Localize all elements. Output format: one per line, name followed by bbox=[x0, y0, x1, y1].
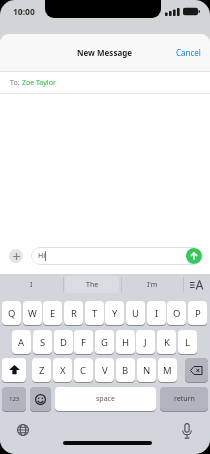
button[interactable] bbox=[30, 387, 51, 411]
staticText: A bbox=[18, 336, 25, 349]
button[interactable] bbox=[9, 249, 23, 263]
button[interactable]: Q bbox=[2, 301, 21, 325]
staticText: C bbox=[80, 364, 87, 377]
staticText: Z bbox=[39, 364, 45, 377]
staticText: P bbox=[195, 307, 201, 320]
staticText: return bbox=[174, 394, 195, 404]
staticText: Q bbox=[8, 307, 16, 320]
button[interactable]: O bbox=[167, 301, 186, 325]
staticText: K bbox=[164, 336, 170, 349]
button[interactable]: To: bbox=[10, 72, 56, 93]
staticText: S bbox=[40, 336, 46, 349]
staticText: 123 bbox=[9, 395, 20, 403]
staticText: F bbox=[81, 336, 86, 349]
button[interactable]: R bbox=[64, 301, 83, 325]
button[interactable]: return bbox=[160, 387, 208, 411]
staticText: E bbox=[50, 307, 56, 320]
button[interactable]: S bbox=[33, 330, 52, 354]
staticText: O bbox=[173, 307, 181, 320]
staticText: Zoe Taylor bbox=[22, 78, 56, 88]
button[interactable]: J bbox=[136, 330, 155, 354]
staticText: U bbox=[132, 307, 139, 320]
staticText: I'm bbox=[147, 280, 158, 290]
button[interactable]: K bbox=[157, 330, 176, 354]
staticText: J bbox=[144, 336, 147, 349]
staticText: H bbox=[122, 336, 130, 349]
staticText: X bbox=[60, 364, 66, 377]
button[interactable]: M bbox=[158, 358, 177, 382]
staticText: The bbox=[86, 280, 99, 290]
button[interactable]: T bbox=[85, 301, 104, 325]
staticText: N bbox=[143, 364, 151, 377]
button[interactable]: The bbox=[63, 275, 121, 294]
staticText: T bbox=[92, 307, 98, 320]
staticText: Cancel bbox=[176, 47, 201, 58]
button[interactable]: U bbox=[126, 301, 145, 325]
staticText: M bbox=[163, 364, 172, 377]
button[interactable] bbox=[11, 418, 35, 442]
staticText: R bbox=[71, 307, 77, 320]
button[interactable]: Y bbox=[105, 301, 124, 325]
button[interactable]: E bbox=[43, 301, 62, 325]
button[interactable] bbox=[185, 358, 208, 382]
staticText: V bbox=[102, 364, 108, 377]
button[interactable]: I'm bbox=[121, 275, 183, 294]
staticText: G bbox=[101, 336, 108, 349]
button[interactable] bbox=[175, 419, 199, 443]
staticText: space bbox=[96, 394, 115, 404]
button[interactable]: F bbox=[74, 330, 93, 354]
staticText: W bbox=[28, 307, 37, 320]
button[interactable]: A bbox=[12, 330, 31, 354]
button[interactable]: W bbox=[23, 301, 42, 325]
button[interactable]: G bbox=[95, 330, 114, 354]
button[interactable]: Cancel bbox=[0, 34, 201, 71]
button[interactable]: P bbox=[188, 301, 207, 325]
button[interactable]: X bbox=[53, 358, 72, 382]
button[interactable]: B bbox=[116, 358, 135, 382]
button[interactable]: D bbox=[54, 330, 73, 354]
button[interactable]: I bbox=[0, 275, 63, 294]
button[interactable]: L bbox=[178, 330, 197, 354]
button[interactable]: I bbox=[147, 301, 166, 325]
button[interactable] bbox=[186, 248, 202, 264]
button[interactable] bbox=[2, 358, 26, 382]
staticText: L bbox=[185, 336, 190, 349]
button[interactable]: space bbox=[55, 387, 156, 411]
staticText: I bbox=[30, 280, 33, 290]
staticText: To: bbox=[10, 78, 22, 88]
staticText: 10:00 bbox=[13, 6, 35, 18]
staticText: New Message bbox=[77, 47, 133, 58]
button[interactable]: Z bbox=[32, 358, 51, 382]
staticText: Y bbox=[112, 307, 118, 320]
button[interactable]: C bbox=[74, 358, 93, 382]
button[interactable]: V bbox=[95, 358, 114, 382]
button[interactable]: H bbox=[116, 330, 135, 354]
staticText: Hi bbox=[38, 251, 45, 261]
staticText: B bbox=[122, 364, 129, 377]
button[interactable]: 123 bbox=[2, 387, 26, 411]
staticText: I bbox=[155, 307, 159, 320]
button[interactable]: N bbox=[137, 358, 156, 382]
staticText: D bbox=[60, 336, 67, 349]
